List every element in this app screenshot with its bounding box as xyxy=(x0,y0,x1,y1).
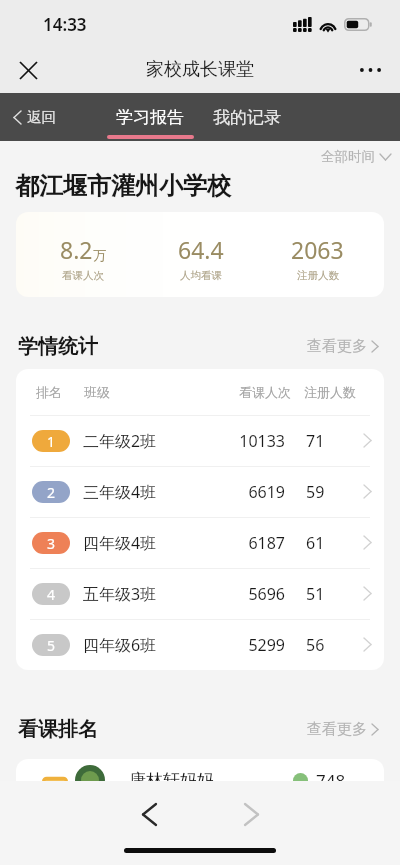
staticText: 56 xyxy=(306,634,325,656)
staticText: 5696 xyxy=(235,583,285,605)
staticText: 注册人数 xyxy=(304,384,356,400)
staticText: 四年级4班 xyxy=(83,532,157,554)
button[interactable]: 全部时间 xyxy=(319,145,393,168)
staticText: 59 xyxy=(306,481,325,503)
staticText: 4 xyxy=(47,585,56,604)
staticText: 6187 xyxy=(235,532,285,554)
staticText: 返回 xyxy=(27,108,56,126)
button[interactable]: 我的记录 xyxy=(201,93,293,141)
staticText: 5299 xyxy=(235,634,285,656)
staticText: 51 xyxy=(306,583,325,605)
button[interactable]: 4 xyxy=(16,568,384,619)
button[interactable]: Forward xyxy=(223,786,279,842)
staticText: 6619 xyxy=(235,481,285,503)
staticText: 2 xyxy=(47,483,56,502)
staticText: 万 xyxy=(93,247,106,263)
staticText: 71 xyxy=(306,430,325,452)
staticText: 三年级4班 xyxy=(83,481,157,503)
staticText: 五年级3班 xyxy=(83,583,157,605)
staticText: 748 xyxy=(316,769,346,792)
staticText: 注册人数 xyxy=(297,269,339,282)
staticText: 四年级6班 xyxy=(83,634,157,656)
staticText: 查看更多 xyxy=(307,720,367,739)
button[interactable]: 学习报告 xyxy=(104,93,196,141)
button[interactable]: 3 xyxy=(16,517,384,568)
button[interactable]: 康林轩妈妈 xyxy=(16,759,384,801)
button[interactable]: 查看更多 xyxy=(305,716,380,743)
staticText: 10133 xyxy=(235,430,285,452)
staticText: 1 xyxy=(47,432,56,451)
staticText: 全部时间 xyxy=(321,148,375,165)
staticText: 8.2 xyxy=(60,234,93,265)
button[interactable]: 5 xyxy=(16,619,384,670)
staticText: 查看更多 xyxy=(307,337,367,356)
staticText: 班级 xyxy=(84,384,110,400)
button[interactable]: 2 xyxy=(16,466,384,517)
staticText: 家校成长课堂 xyxy=(146,58,254,81)
staticText: 排名 xyxy=(36,384,62,400)
staticText: 二年级2班 xyxy=(83,430,157,452)
button[interactable]: Close xyxy=(6,48,50,92)
staticText: 我的记录 xyxy=(213,107,281,128)
staticText: 14:33 xyxy=(43,13,87,36)
staticText: 康林轩妈妈 xyxy=(129,770,214,791)
staticText: 看课人次 xyxy=(62,269,104,282)
button[interactable]: 1 xyxy=(16,415,384,466)
staticText: 5 xyxy=(47,636,56,655)
staticText: 看课排名 xyxy=(18,717,98,742)
staticText: 2063 xyxy=(291,234,344,265)
staticText: 3 xyxy=(47,534,56,553)
button[interactable]: 查看更多 xyxy=(305,333,380,360)
button[interactable]: More options xyxy=(348,48,392,92)
staticText: 人均看课 xyxy=(180,269,222,282)
staticText: 看课人次 xyxy=(239,384,291,400)
staticText: 学习报告 xyxy=(116,107,184,128)
button[interactable]: 返回 xyxy=(10,100,60,134)
staticText: 都江堰市灌州小学校 xyxy=(15,171,231,201)
staticText: 61 xyxy=(306,532,325,554)
button[interactable]: Back xyxy=(121,786,177,842)
staticText: 学情统计 xyxy=(18,334,98,359)
staticText: 64.4 xyxy=(178,234,224,265)
